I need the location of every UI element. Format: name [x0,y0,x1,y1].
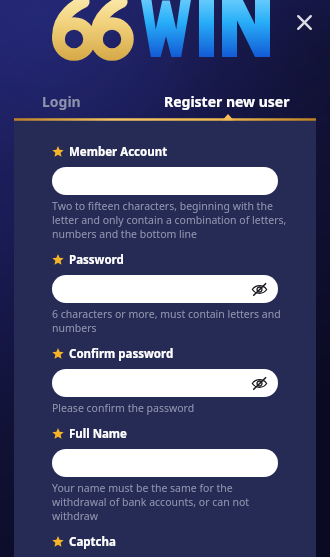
button[interactable] [52,449,278,477]
button[interactable]: Show password [248,278,270,300]
button[interactable]: Close [288,6,320,38]
button[interactable]: Show password [52,369,278,397]
staticText: 6 characters or more, must contain lette… [52,307,288,335]
staticText: Password [69,252,124,268]
button[interactable]: Login [28,87,94,115]
button[interactable]: Show password [248,372,270,394]
button[interactable] [52,167,278,195]
staticText: Register new user [164,92,290,111]
staticText: Member Account [69,144,168,160]
staticText: Captcha [69,534,116,550]
staticText: Login [42,92,81,111]
staticText: Please confirm the password [52,401,195,415]
staticText: Full Name [69,426,127,442]
button[interactable]: Show password [52,275,278,303]
staticText: Two to fifteen characters, beginning wit… [52,199,288,241]
button[interactable]: Register new user [148,87,306,115]
staticText: Your name must be the same for the withd… [52,481,288,523]
staticText: Confirm password [69,346,174,362]
